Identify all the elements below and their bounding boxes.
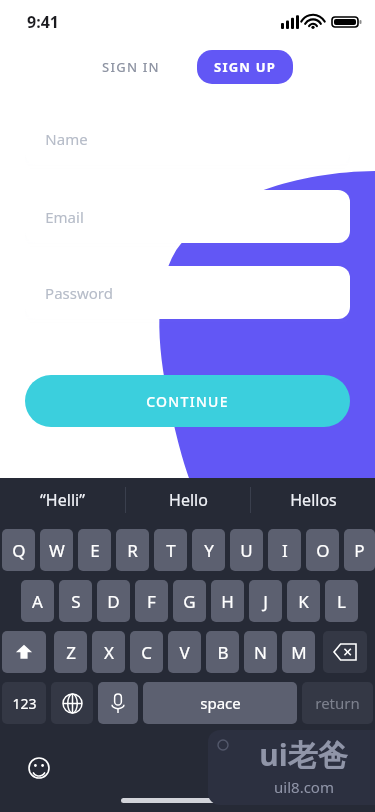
staticText: Z: [66, 641, 76, 664]
staticText: Q: [12, 539, 26, 562]
button[interactable]: A: [21, 580, 54, 622]
staticText: T: [166, 539, 176, 562]
staticText: space: [200, 693, 241, 713]
button[interactable]: I: [268, 529, 301, 571]
staticText: G: [183, 590, 196, 613]
staticText: Name: [45, 129, 88, 149]
button[interactable]: V: [168, 631, 201, 673]
button[interactable]: E: [78, 529, 111, 571]
staticText: J: [263, 590, 268, 613]
button[interactable]: CONTINUE: [25, 375, 350, 427]
staticText: V: [179, 641, 190, 664]
button[interactable]: C: [130, 631, 163, 673]
button[interactable]: T: [154, 529, 187, 571]
button[interactable]: D: [97, 580, 130, 622]
button[interactable]: Hello: [126, 478, 250, 522]
button[interactable]: W: [40, 529, 73, 571]
staticText: X: [104, 641, 114, 664]
staticText: S: [71, 590, 81, 613]
staticText: I: [282, 539, 288, 562]
button[interactable]: Password: [25, 266, 350, 319]
staticText: P: [354, 539, 365, 562]
staticText: E: [90, 539, 100, 562]
staticText: Hellos: [290, 489, 337, 511]
button[interactable]: N: [244, 631, 277, 673]
staticText: R: [127, 539, 138, 562]
button[interactable]: P: [344, 529, 375, 571]
button[interactable]: R: [116, 529, 149, 571]
button[interactable]: S: [59, 580, 92, 622]
button[interactable]: SIGN IN: [88, 51, 174, 83]
button[interactable]: Name: [25, 112, 350, 165]
staticText: D: [107, 590, 120, 613]
button[interactable]: Voice input: [98, 682, 138, 724]
button[interactable]: Email: [25, 190, 350, 243]
button[interactable]: SIGN UP: [197, 50, 293, 84]
staticText: W: [49, 539, 65, 562]
button[interactable]: “Helli”: [0, 478, 125, 522]
staticText: SIGN IN: [102, 58, 160, 76]
button[interactable]: 123: [2, 682, 46, 724]
button[interactable]: U: [230, 529, 263, 571]
staticText: B: [217, 641, 229, 664]
button[interactable]: X: [92, 631, 125, 673]
staticText: ui老爸: [259, 734, 348, 775]
button[interactable]: return: [302, 682, 373, 724]
button[interactable]: L: [325, 580, 358, 622]
button[interactable]: B: [206, 631, 239, 673]
staticText: N: [254, 641, 267, 664]
staticText: Hello: [169, 489, 208, 511]
button[interactable]: Backspace: [323, 631, 367, 673]
button[interactable]: G: [173, 580, 206, 622]
button[interactable]: Y: [192, 529, 225, 571]
staticText: return: [315, 693, 360, 713]
staticText: “Helli”: [40, 489, 85, 511]
button[interactable]: K: [287, 580, 320, 622]
button[interactable]: M: [282, 631, 315, 673]
staticText: L: [337, 590, 346, 613]
button[interactable]: F: [135, 580, 168, 622]
button[interactable]: Emoji: [24, 753, 54, 783]
button[interactable]: H: [211, 580, 244, 622]
button[interactable]: J: [249, 580, 282, 622]
staticText: Email: [45, 207, 84, 227]
staticText: Y: [204, 539, 214, 562]
staticText: F: [147, 590, 156, 613]
button[interactable]: Z: [54, 631, 87, 673]
button[interactable]: Shift: [2, 631, 46, 673]
staticText: U: [240, 539, 253, 562]
staticText: K: [298, 590, 309, 613]
staticText: CONTINUE: [146, 392, 229, 411]
staticText: M: [291, 641, 307, 664]
button[interactable]: O: [306, 529, 339, 571]
button[interactable]: Hellos: [251, 478, 375, 522]
button[interactable]: Q: [2, 529, 35, 571]
staticText: Password: [45, 283, 113, 303]
staticText: A: [32, 590, 43, 613]
staticText: 123: [12, 694, 37, 713]
staticText: uil8.com: [274, 777, 334, 797]
button[interactable]: space: [143, 682, 297, 724]
staticText: O: [316, 539, 330, 562]
button[interactable]: Change keyboard language: [51, 682, 93, 724]
staticText: 9:41: [27, 11, 59, 33]
staticText: SIGN UP: [214, 58, 276, 76]
staticText: C: [141, 641, 152, 664]
staticText: H: [221, 590, 234, 613]
